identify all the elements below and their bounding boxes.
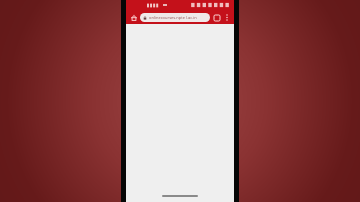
button[interactable]: Home — [129, 13, 138, 22]
button[interactable]: Switch tabs — [212, 13, 221, 22]
button[interactable]: onlinecourses.npte l.ac.in — [140, 13, 210, 22]
button[interactable]: More options — [222, 13, 231, 22]
staticText: onlinecourses.npte l.ac.in — [149, 15, 197, 20]
